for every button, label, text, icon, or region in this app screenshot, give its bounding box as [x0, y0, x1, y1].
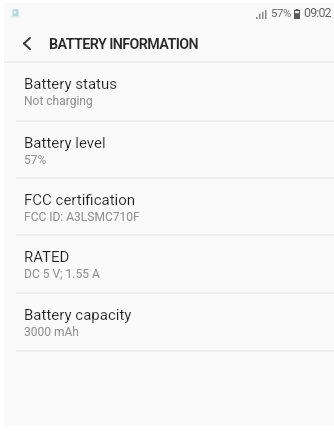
staticText: 57% [271, 6, 291, 19]
staticText: 09:02 [304, 5, 331, 20]
staticText: DC 5 V; 1.55 A [24, 267, 100, 281]
staticText: Not charging [24, 94, 93, 108]
staticText: BATTERY INFORMATION [49, 36, 199, 53]
staticText: Battery level [24, 134, 106, 152]
staticText: RATED [24, 248, 70, 266]
button[interactable]: Battery status [4, 63, 334, 122]
staticText: Battery status [24, 75, 118, 93]
button[interactable]: Battery level [4, 122, 334, 179]
staticText: FCC certification [24, 191, 136, 209]
staticText: 57% [24, 153, 47, 167]
staticText: Battery capacity [24, 306, 132, 324]
button[interactable]: RATED [4, 236, 334, 294]
staticText: FCC ID: A3LSMC710F [24, 210, 140, 224]
staticText: 3000 mAh [24, 325, 79, 339]
button[interactable]: Navigate up [4, 21, 48, 61]
button[interactable]: FCC certification [4, 179, 334, 236]
button[interactable]: Battery capacity [4, 294, 334, 352]
